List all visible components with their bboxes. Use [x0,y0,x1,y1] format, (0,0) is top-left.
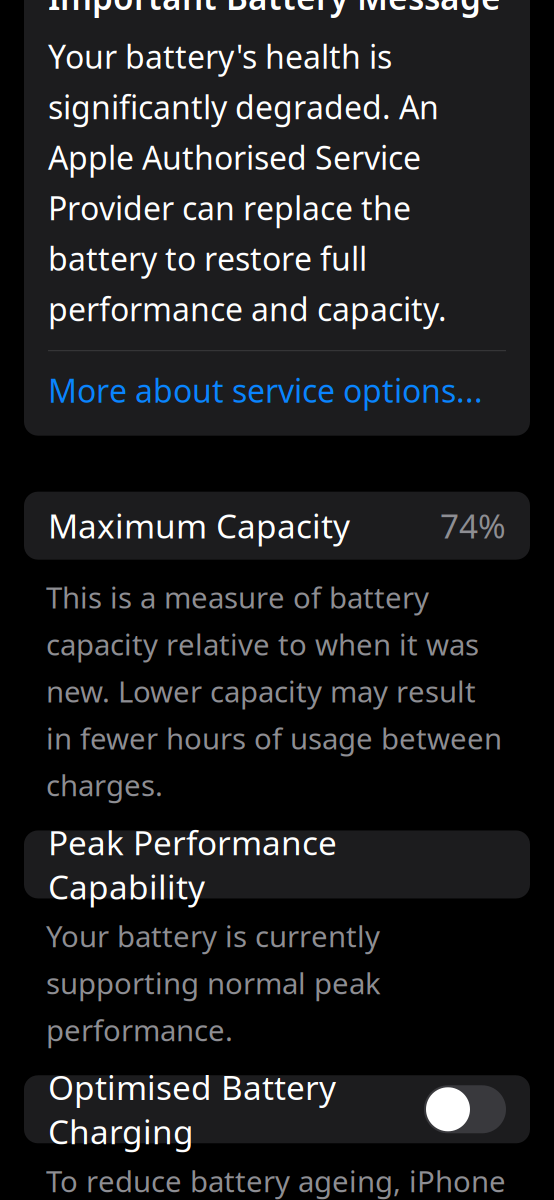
button[interactable]: Peak Performance Capability [24,830,530,898]
staticText: Peak Performance Capability [48,820,337,909]
staticText: Optimised Battery Charging [48,1065,336,1153]
staticText: 74% [440,503,506,548]
button[interactable]: Optimised Battery Charging [24,1075,530,1143]
button[interactable]: More about service options... [48,369,506,412]
staticText: Your battery's health is significantly d… [48,35,447,330]
staticText: Important Battery Message [48,0,501,19]
staticText: More about service options... [48,369,483,412]
staticText: This is a measure of battery capacity re… [46,578,502,804]
button[interactable]: Maximum Capacity [24,492,530,560]
staticText: To reduce battery ageing, iPhone learns … [46,1161,506,1200]
staticText: Maximum Capacity [48,503,350,548]
staticText: Your battery is currently supporting nor… [46,916,381,1049]
